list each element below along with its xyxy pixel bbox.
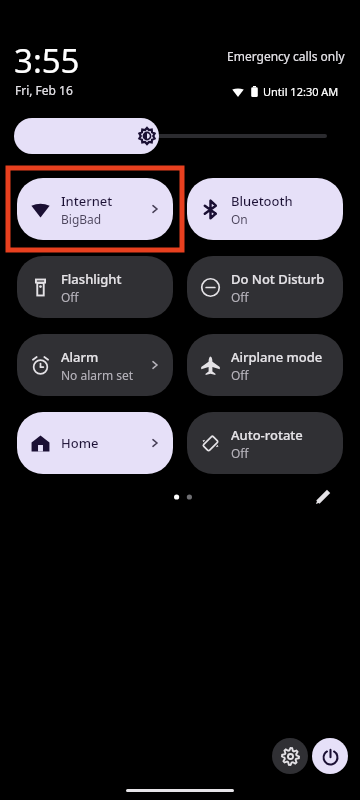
staticText: Internet [61, 192, 113, 210]
button[interactable]: Bluetooth [187, 178, 343, 240]
staticText: Off [231, 445, 249, 461]
button[interactable]: Auto-rotate [187, 412, 343, 474]
staticText: Fri, Feb 16 [15, 82, 73, 98]
button[interactable]: Do Not Disturb [187, 256, 343, 318]
staticText: Bluetooth [231, 192, 293, 210]
staticText: Until 12:30 AM [263, 84, 339, 99]
staticText: BigBad [61, 211, 102, 227]
button[interactable]: Flashlight [17, 256, 173, 318]
button[interactable]: Alarm [17, 334, 173, 396]
staticText: Flashlight [61, 270, 122, 288]
button[interactable]: Edit [310, 484, 336, 510]
staticText: No alarm set [61, 367, 134, 383]
staticText: Off [231, 289, 249, 305]
staticText: On [231, 211, 248, 227]
staticText: Do Not Disturb [231, 270, 325, 288]
button[interactable]: Internet [17, 178, 173, 240]
staticText: Emergency calls only [227, 48, 345, 64]
button[interactable]: Settings [272, 738, 308, 774]
staticText: 3:55 [14, 38, 80, 83]
staticText: Alarm [61, 348, 99, 366]
staticText: Off [231, 367, 249, 383]
button[interactable]: Home [17, 412, 173, 474]
button[interactable]: Brightness [14, 118, 327, 154]
button[interactable]: Power [312, 738, 348, 774]
staticText: Off [61, 289, 79, 305]
staticText: Home [61, 434, 99, 452]
button[interactable]: Airplane mode [187, 334, 343, 396]
staticText: Airplane mode [231, 348, 323, 366]
staticText: Auto-rotate [231, 426, 303, 444]
